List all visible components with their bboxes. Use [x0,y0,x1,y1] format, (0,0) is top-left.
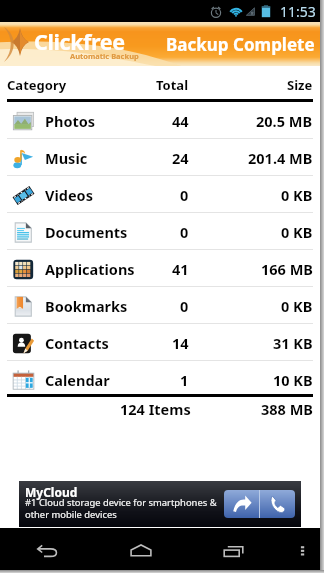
staticText: 14 [172,333,189,353]
staticText: Clickfree [34,27,125,56]
staticText: #1 Cloud storage device for smartphones … [25,496,217,521]
staticText: Music [45,148,88,168]
staticText: 24 [172,148,189,168]
staticText: 0 KB [281,222,313,242]
button[interactable]: Contacts [0,324,324,361]
staticText: 20.5 MB [256,111,313,131]
button[interactable]: Calendar [0,361,324,398]
staticText: Category [7,76,67,94]
staticText: 11:53 [280,2,316,21]
staticText: 0 [180,222,189,242]
staticText: 124 Items [120,399,191,419]
staticText: 166 MB [261,259,313,279]
staticText: 1 [180,370,189,390]
staticText: 388 MB [261,399,313,419]
staticText: Videos [45,185,93,205]
button[interactable]: Back [0,528,94,573]
staticText: 41 [172,259,189,279]
staticText: Automatic Backup [70,51,139,61]
button[interactable]: Videos [0,176,324,213]
staticText: 0 [180,185,189,205]
staticText: Total [156,76,189,94]
button[interactable]: MyCloud [19,481,301,527]
staticText: 31 KB [273,333,313,353]
button[interactable]: Music [0,139,324,176]
staticText: Documents [45,222,128,242]
button[interactable]: Open link [224,490,259,518]
button[interactable]: More options [282,528,324,573]
staticText: 0 [180,296,189,316]
staticText: 0 KB [281,185,313,205]
staticText: Contacts [45,333,109,353]
staticText: 201.4 MB [248,148,313,168]
button[interactable]: Recent apps [188,528,282,573]
button[interactable]: Photos [0,102,324,139]
staticText: Bookmarks [45,296,128,316]
staticText: Calendar [45,370,110,390]
staticText: Backup Complete [166,33,315,56]
staticText: 44 [172,111,189,131]
staticText: MyCloud [25,484,78,500]
button[interactable]: Bookmarks [0,287,324,324]
staticText: 0 KB [281,296,313,316]
button[interactable]: Documents [0,213,324,250]
button[interactable]: Home [94,528,188,573]
staticText: Size [287,76,313,94]
button[interactable]: Applications [0,250,324,287]
staticText: Photos [45,111,96,131]
button[interactable]: Call [260,490,295,518]
staticText: 10 KB [273,370,313,390]
staticText: Applications [45,259,135,279]
